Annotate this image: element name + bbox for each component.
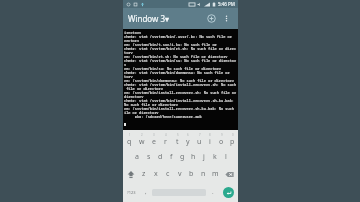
button[interactable]: a: [131, 149, 142, 164]
staticText: file or directory: [124, 86, 163, 90]
button[interactable]: x: [150, 166, 161, 182]
staticText: c: [166, 169, 170, 179]
button[interactable]: k: [210, 149, 220, 164]
staticText: No such file or directory: [124, 102, 178, 106]
staticText: 2: [141, 133, 143, 137]
button[interactable]: irectory: [123, 29, 238, 130]
staticText: chmtr: stat /system/bin/.ussr/.bc: No su…: [124, 34, 238, 38]
staticText: a: [135, 152, 139, 162]
staticText: rm: /system/bin/rt.sh: No such file or d…: [124, 54, 228, 58]
button[interactable]: Backspace: [222, 166, 237, 182]
staticText: chmtr: stat /system/bin/daemonsu: No suc…: [124, 70, 238, 74]
staticText: h: [191, 152, 196, 162]
button[interactable]: 9: [216, 132, 226, 147]
staticText: Window 3▾: [128, 13, 170, 24]
button[interactable]: ?123: [124, 184, 139, 200]
staticText: q: [127, 137, 132, 147]
button[interactable]: 3: [148, 132, 159, 147]
staticText: k: [213, 152, 217, 162]
button[interactable]: j: [199, 149, 209, 164]
staticText: chmtr: stat /system/bin/install-recovery…: [124, 82, 237, 86]
button[interactable]: h: [188, 149, 198, 164]
button[interactable]: s: [143, 149, 154, 164]
staticText: l: [225, 152, 227, 162]
staticText: s: [147, 152, 151, 162]
button[interactable]: m: [210, 166, 221, 182]
button[interactable]: 4: [160, 132, 171, 147]
button[interactable]: z: [139, 166, 149, 182]
button[interactable]: .: [207, 184, 218, 200]
staticText: o: [219, 137, 224, 147]
staticText: 7: [199, 133, 201, 137]
staticText: rm: /system/bin/install-recovery.sh-ku.b…: [124, 106, 238, 110]
button[interactable]: b: [186, 166, 197, 182]
staticText: t: [176, 137, 179, 147]
button[interactable]: d: [155, 149, 165, 164]
staticText: 1: [129, 133, 131, 137]
staticText: directory: [124, 94, 144, 98]
staticText: n: [201, 169, 206, 179]
staticText: tory: [124, 74, 133, 78]
staticText: f: [170, 152, 173, 162]
staticText: m: [212, 169, 219, 179]
button[interactable]: ,: [140, 184, 151, 200]
staticText: 5: [177, 133, 179, 137]
staticText: p: [230, 137, 235, 147]
staticText: .: [212, 188, 214, 196]
staticText: ,: [145, 188, 147, 196]
button[interactable]: l: [221, 149, 231, 164]
staticText: ile or directory: [124, 110, 159, 114]
button[interactable]: c: [162, 166, 173, 182]
staticText: g: [180, 152, 185, 162]
staticText: w: [139, 137, 145, 147]
staticText: chmtr: stat /system/bin/install-recovery…: [124, 98, 234, 102]
staticText: rm: /system/bin/t.sor/i.ku: No such file…: [124, 42, 238, 46]
staticText: e: [152, 137, 156, 147]
staticText: 3: [153, 133, 155, 137]
button[interactable]: 0: [227, 132, 237, 147]
staticText: d: [158, 152, 163, 162]
button[interactable]: f: [166, 149, 176, 164]
button[interactable]: Shift: [124, 166, 138, 182]
staticText: r: [164, 137, 167, 147]
staticText: 9: [221, 133, 223, 137]
button[interactable]: 1: [124, 132, 135, 147]
staticText: j: [203, 152, 205, 162]
staticText: tory: [124, 50, 133, 54]
staticText: rm: /system/bin/daemonsu: No such file o…: [124, 78, 234, 82]
button[interactable]: More options: [220, 12, 233, 25]
button[interactable]: g: [177, 149, 187, 164]
staticText: 5:46 PM: [218, 1, 235, 7]
staticText: i: [209, 137, 211, 147]
staticText: y: [124, 62, 127, 66]
button[interactable]: 7: [194, 132, 204, 147]
button[interactable]: v: [174, 166, 185, 182]
staticText: rm: /system/bin/su: No such file or dire…: [124, 66, 222, 70]
button[interactable]: 5: [172, 132, 182, 147]
staticText: 0: [232, 133, 234, 137]
staticText: x: [154, 169, 158, 179]
staticText: chmtr: stat /system/bin/rt.sh: No such f…: [124, 46, 237, 50]
button[interactable]: Enter: [219, 184, 237, 200]
button[interactable]: 6: [183, 132, 193, 147]
staticText: 8: [209, 133, 211, 137]
staticText: 4: [165, 133, 167, 137]
staticText: chmtr: stat /system/bin/su: No such file…: [124, 58, 237, 62]
staticText: z: [142, 169, 146, 179]
staticText: v: [178, 169, 182, 179]
button[interactable]: 8: [205, 132, 215, 147]
button[interactable]: 2: [136, 132, 147, 147]
staticText: u: [197, 137, 202, 147]
button[interactable]: n: [198, 166, 209, 182]
staticText: b: [189, 169, 194, 179]
staticText: ?123: [127, 190, 136, 195]
staticText: rm: /system/bin/install-recovery.sh: No …: [124, 90, 237, 94]
staticText: pkg: /sdcard/here/superuser.apk: [124, 114, 202, 118]
staticText: rectory: [124, 38, 140, 42]
staticText: y: [186, 137, 190, 147]
staticText: irectory: [124, 30, 142, 34]
button[interactable]: New window: [205, 12, 218, 25]
staticText: 6: [187, 133, 189, 137]
